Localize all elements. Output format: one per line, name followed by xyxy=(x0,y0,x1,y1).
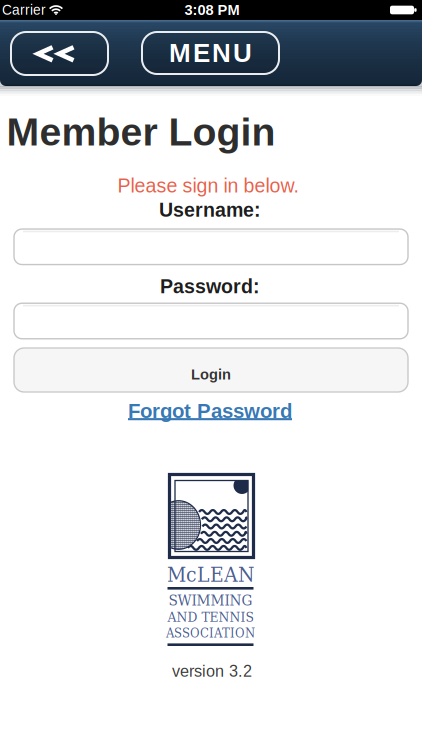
button[interactable]: Back xyxy=(11,32,108,75)
staticText: McLEAN xyxy=(167,562,254,587)
staticText: Username: xyxy=(159,199,261,221)
staticText: Carrier xyxy=(2,2,46,18)
staticText: AND TENNIS xyxy=(167,609,253,625)
staticText: MENU xyxy=(169,38,252,67)
button[interactable]: Forgot Password xyxy=(128,400,292,422)
staticText: ASSOCIATION xyxy=(166,625,255,641)
staticText: Login xyxy=(191,366,231,383)
staticText: Forgot Password xyxy=(128,400,292,422)
button[interactable]: MENU xyxy=(142,32,279,74)
staticText: Password: xyxy=(160,276,260,297)
staticText: 3:08 PM xyxy=(184,2,239,18)
button[interactable]: Password xyxy=(14,303,408,339)
staticText: version 3.2 xyxy=(172,662,252,680)
button[interactable]: Username xyxy=(14,229,408,265)
button[interactable]: Login xyxy=(14,348,408,392)
staticText: Member Login xyxy=(6,110,275,154)
staticText: Please sign in below. xyxy=(117,175,298,197)
staticText: SWIMMING xyxy=(168,591,252,609)
